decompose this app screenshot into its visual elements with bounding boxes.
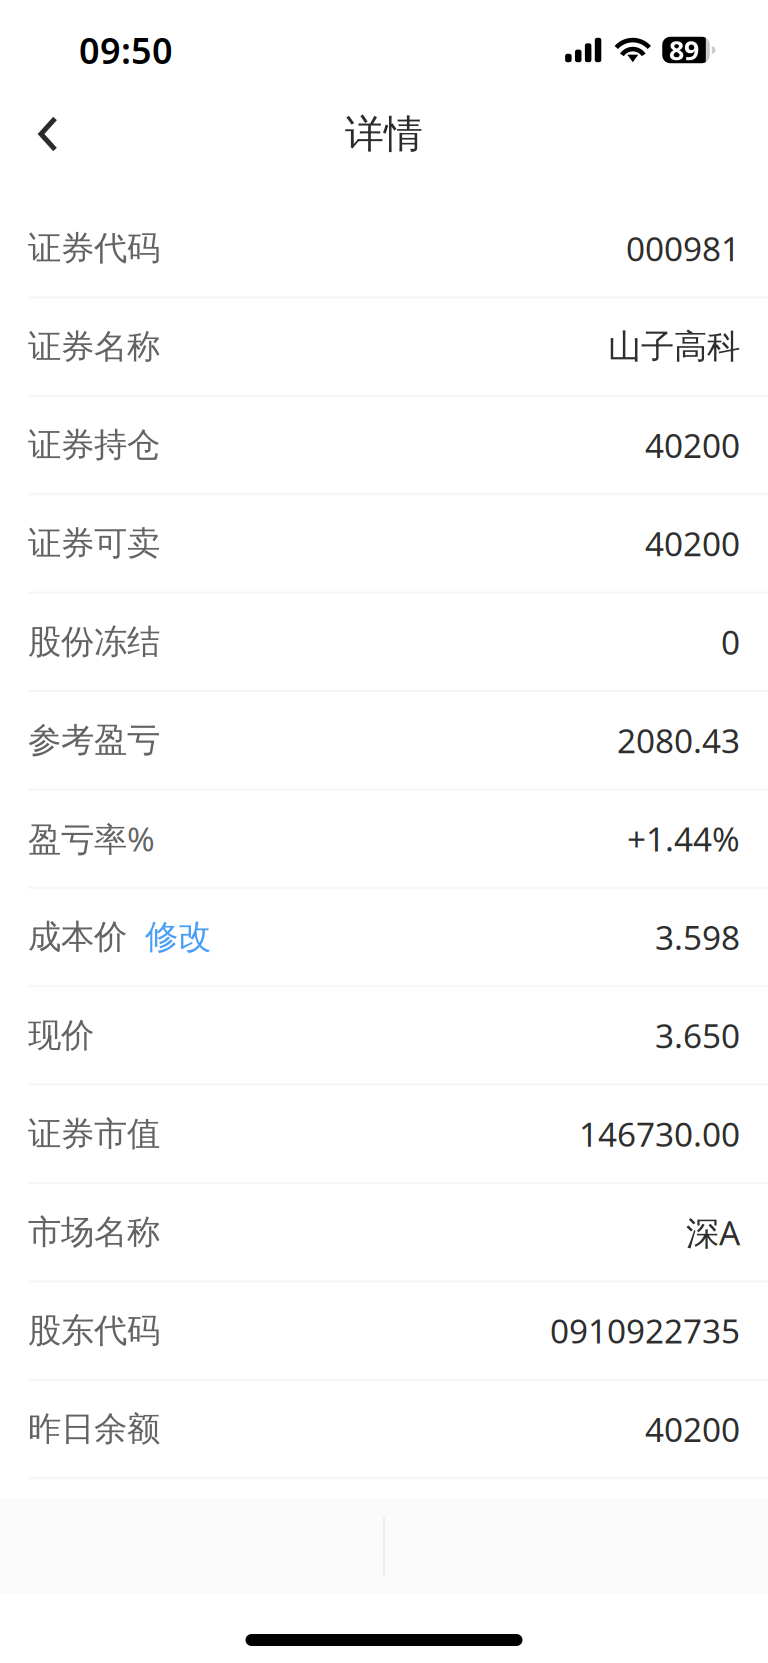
- staticText: 09:50: [79, 26, 173, 74]
- button[interactable]: 证券持仓: [0, 397, 768, 493]
- staticText: 2080.43: [617, 718, 740, 762]
- button[interactable]: 成本价: [0, 889, 768, 985]
- staticText: 证券可卖: [28, 523, 160, 564]
- button[interactable]: 证券可卖: [0, 495, 768, 592]
- button[interactable]: Back: [0, 100, 96, 168]
- button[interactable]: 股东代码: [0, 1282, 768, 1379]
- staticText: 证券市值: [28, 1113, 160, 1154]
- staticText: 市场名称: [28, 1212, 160, 1253]
- staticText: 0: [721, 620, 740, 664]
- button[interactable]: 证券名称: [0, 298, 768, 395]
- staticText: 证券持仓: [28, 424, 160, 465]
- staticText: 89: [669, 32, 699, 68]
- staticText: 40200: [645, 423, 740, 467]
- staticText: 现价: [28, 1015, 94, 1056]
- staticText: 146730.00: [579, 1112, 740, 1156]
- staticText: 昨日余额: [28, 1408, 160, 1449]
- staticText: 股份冻结: [28, 621, 160, 662]
- button[interactable]: 昨日余额: [0, 1381, 768, 1477]
- button[interactable]: 现价: [0, 987, 768, 1084]
- staticText: 证券代码: [28, 228, 160, 269]
- staticText: 深A: [686, 1210, 740, 1254]
- button[interactable]: 市场名称: [0, 1184, 768, 1280]
- button[interactable]: 证券市值: [0, 1086, 768, 1182]
- button[interactable]: 参考盈亏: [0, 692, 768, 788]
- button[interactable]: 证券代码: [0, 200, 768, 296]
- staticText: 修改: [145, 916, 211, 957]
- staticText: 40200: [645, 521, 740, 566]
- staticText: 参考盈亏: [28, 720, 160, 761]
- staticText: 详情: [345, 110, 423, 158]
- staticText: 成本价: [28, 916, 127, 957]
- staticText: 盈亏率%: [28, 816, 155, 861]
- staticText: +1.44%: [627, 816, 740, 861]
- staticText: 证券名称: [28, 326, 160, 367]
- button[interactable]: 盈亏率%: [0, 790, 768, 887]
- staticText: 000981: [626, 226, 740, 270]
- staticText: 3.598: [655, 915, 740, 959]
- button[interactable]: 修改: [145, 916, 211, 957]
- staticText: 3.650: [655, 1013, 740, 1058]
- staticText: 40200: [645, 1407, 740, 1451]
- staticText: 0910922735: [550, 1308, 740, 1353]
- staticText: 股东代码: [28, 1310, 160, 1351]
- staticText: 山子高科: [608, 326, 740, 367]
- button[interactable]: 股份冻结: [0, 594, 768, 690]
